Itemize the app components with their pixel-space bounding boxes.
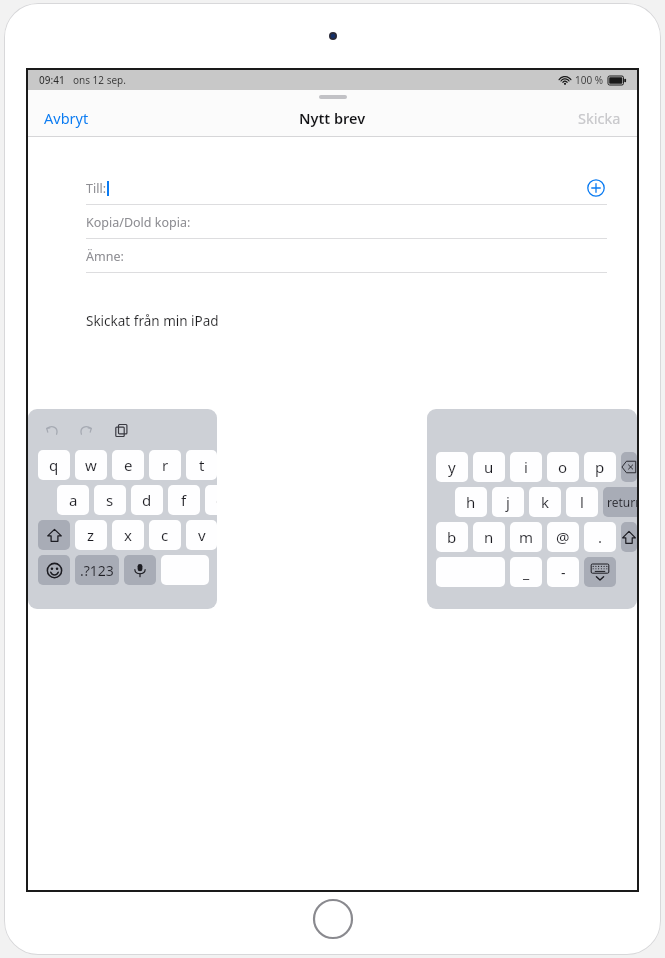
- button[interactable]: f: [168, 485, 200, 515]
- staticText: Till:: [86, 180, 106, 197]
- staticText: c: [161, 525, 169, 545]
- button[interactable]: Emoji: [38, 555, 70, 585]
- staticText: 100 %: [575, 73, 604, 87]
- button[interactable]: y: [436, 452, 468, 482]
- staticText: 09:41: [39, 73, 65, 87]
- button[interactable]: g: [205, 485, 217, 515]
- button[interactable]: n: [473, 522, 505, 552]
- staticText: h: [466, 492, 476, 512]
- button[interactable]: _: [510, 557, 542, 587]
- button[interactable]: Till:: [86, 171, 607, 205]
- staticText: r: [162, 455, 169, 475]
- staticText: Kopia/Dold kopia:: [86, 214, 191, 231]
- staticText: p: [595, 457, 605, 477]
- staticText: Nytt brev: [299, 108, 366, 128]
- button[interactable]: Space: [161, 555, 209, 585]
- button[interactable]: l: [566, 487, 598, 517]
- staticText: w: [85, 455, 97, 475]
- staticText: q: [49, 455, 59, 475]
- staticText: n: [484, 527, 494, 547]
- staticText: y: [448, 457, 456, 477]
- staticText: f: [181, 490, 187, 510]
- button[interactable]: j: [492, 487, 524, 517]
- button[interactable]: s: [94, 485, 126, 515]
- staticText: a: [69, 490, 78, 510]
- button[interactable]: Shift: [38, 520, 70, 550]
- button[interactable]: x: [112, 520, 144, 550]
- staticText: .: [598, 527, 603, 547]
- button[interactable]: c: [149, 520, 181, 550]
- staticText: Avbryt: [44, 108, 89, 128]
- button[interactable]: v: [186, 520, 217, 550]
- button[interactable]: .?123: [75, 555, 119, 585]
- button[interactable]: @: [547, 522, 579, 552]
- staticText: return: [607, 494, 637, 510]
- other: Home: [313, 899, 353, 939]
- button[interactable]: Ämne:: [86, 239, 607, 273]
- staticText: ons 12 sep.: [73, 73, 126, 87]
- staticText: o: [558, 457, 568, 477]
- button[interactable]: b: [436, 522, 468, 552]
- staticText: t: [199, 455, 205, 475]
- button[interactable]: k: [529, 487, 561, 517]
- button[interactable]: t: [186, 450, 217, 480]
- button[interactable]: o: [547, 452, 579, 482]
- button[interactable]: Shift: [621, 522, 637, 552]
- button[interactable]: Undo: [38, 417, 64, 443]
- button[interactable]: Skicka: [570, 103, 629, 133]
- staticText: .?123: [80, 561, 114, 580]
- staticText: j: [506, 492, 510, 512]
- button[interactable]: d: [131, 485, 163, 515]
- staticText: z: [87, 525, 95, 545]
- staticText: x: [124, 525, 132, 545]
- button[interactable]: Redo: [73, 417, 99, 443]
- staticText: l: [580, 492, 584, 512]
- button[interactable]: Add contact: [585, 177, 607, 199]
- button[interactable]: i: [510, 452, 542, 482]
- button[interactable]: .: [584, 522, 616, 552]
- staticText: d: [142, 490, 152, 510]
- staticText: s: [106, 490, 114, 510]
- staticText: Skickat från min iPad: [86, 312, 219, 330]
- button[interactable]: p: [584, 452, 616, 482]
- staticText: i: [524, 457, 528, 477]
- staticText: b: [447, 527, 457, 547]
- staticText: m: [519, 527, 534, 547]
- button[interactable]: a: [57, 485, 89, 515]
- button[interactable]: Paste: [108, 417, 134, 443]
- staticText: Ämne:: [86, 248, 124, 265]
- button[interactable]: Avbryt: [36, 103, 97, 133]
- button[interactable]: q: [38, 450, 70, 480]
- staticText: v: [198, 525, 206, 545]
- button[interactable]: m: [510, 522, 542, 552]
- button[interactable]: Dictation: [124, 555, 156, 585]
- staticText: _: [523, 563, 530, 582]
- button[interactable]: -: [547, 557, 579, 587]
- button[interactable]: Hide keyboard: [584, 557, 616, 587]
- staticText: @: [556, 527, 570, 547]
- staticText: u: [484, 457, 494, 477]
- button[interactable]: h: [455, 487, 487, 517]
- button[interactable]: z: [75, 520, 107, 550]
- button[interactable]: Kopia/Dold kopia:: [86, 205, 607, 239]
- staticText: g: [216, 490, 217, 510]
- button[interactable]: w: [75, 450, 107, 480]
- staticText: e: [124, 455, 133, 475]
- button[interactable]: Backspace: [621, 452, 637, 482]
- button[interactable]: u: [473, 452, 505, 482]
- staticText: Skicka: [578, 108, 621, 128]
- button[interactable]: Space: [436, 557, 505, 587]
- staticText: k: [541, 492, 550, 512]
- button[interactable]: e: [112, 450, 144, 480]
- button[interactable]: return: [603, 487, 637, 517]
- staticText: -: [561, 563, 566, 582]
- button[interactable]: r: [149, 450, 181, 480]
